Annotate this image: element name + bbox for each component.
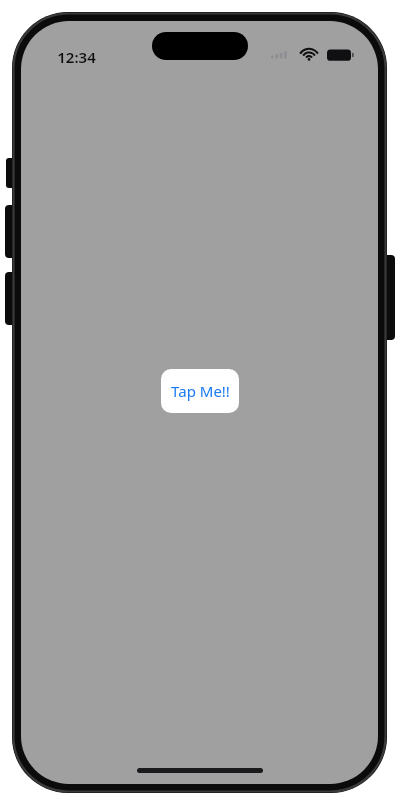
button[interactable]: Tap Me!! bbox=[161, 369, 239, 413]
staticText: Tap Me!! bbox=[171, 381, 230, 401]
staticText: 12:34 bbox=[57, 47, 96, 67]
other: Home indicator bbox=[137, 768, 263, 773]
